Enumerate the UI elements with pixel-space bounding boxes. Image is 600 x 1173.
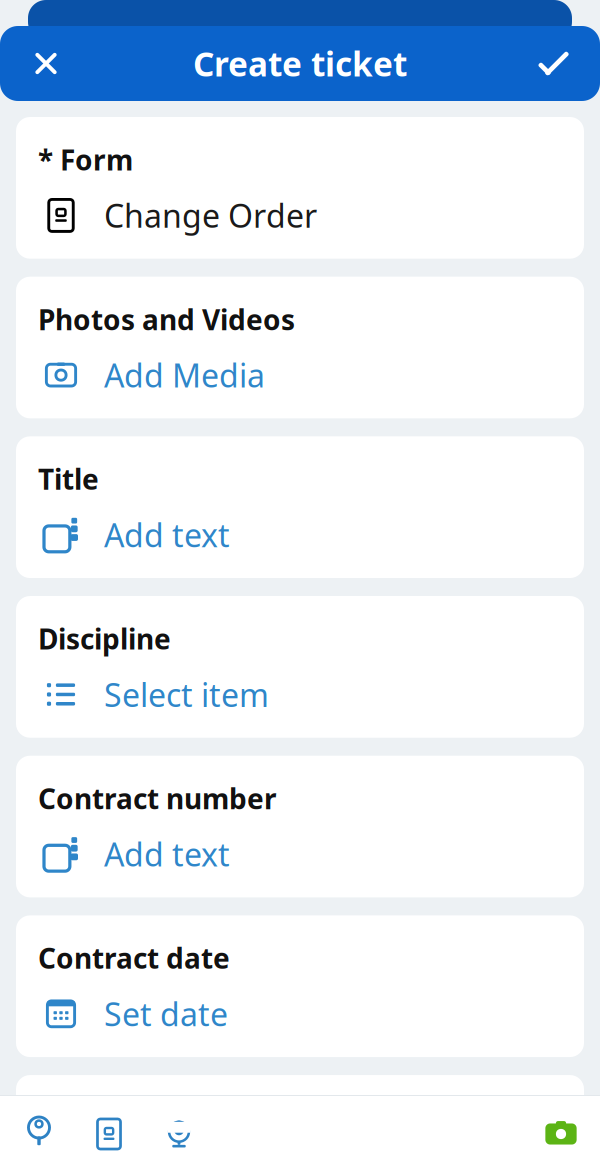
staticText: Create ticket: [193, 41, 407, 86]
button[interactable]: Add text: [16, 817, 584, 897]
staticText: Select item: [104, 673, 269, 716]
button[interactable]: Close: [14, 31, 78, 95]
button[interactable]: Add Media: [16, 338, 584, 418]
staticText: Description of change: [38, 1099, 343, 1136]
staticText: Title: [38, 460, 99, 498]
button[interactable]: Location: [4, 1099, 74, 1169]
button[interactable]: Set date: [16, 977, 584, 1057]
button[interactable]: Change Order: [16, 178, 584, 259]
button[interactable]: Camera: [526, 1099, 596, 1169]
button[interactable]: Voice note: [144, 1099, 214, 1169]
staticText: Add text: [104, 833, 230, 875]
button[interactable]: Save: [522, 31, 586, 95]
staticText: Contract date: [38, 939, 230, 977]
button[interactable]: Add text: [16, 497, 584, 578]
staticText: Add text: [104, 513, 230, 556]
staticText: Contract number: [38, 780, 277, 817]
button[interactable]: Documents: [74, 1099, 144, 1169]
staticText: Photos and Videos: [38, 301, 295, 338]
staticText: * Form: [38, 141, 133, 178]
staticText: Set date: [104, 993, 228, 1035]
staticText: Add Media: [104, 354, 265, 396]
button[interactable]: Add text: [16, 1136, 584, 1173]
staticText: Change Order: [104, 194, 317, 237]
staticText: Discipline: [38, 620, 171, 657]
button[interactable]: Select item: [16, 657, 584, 738]
